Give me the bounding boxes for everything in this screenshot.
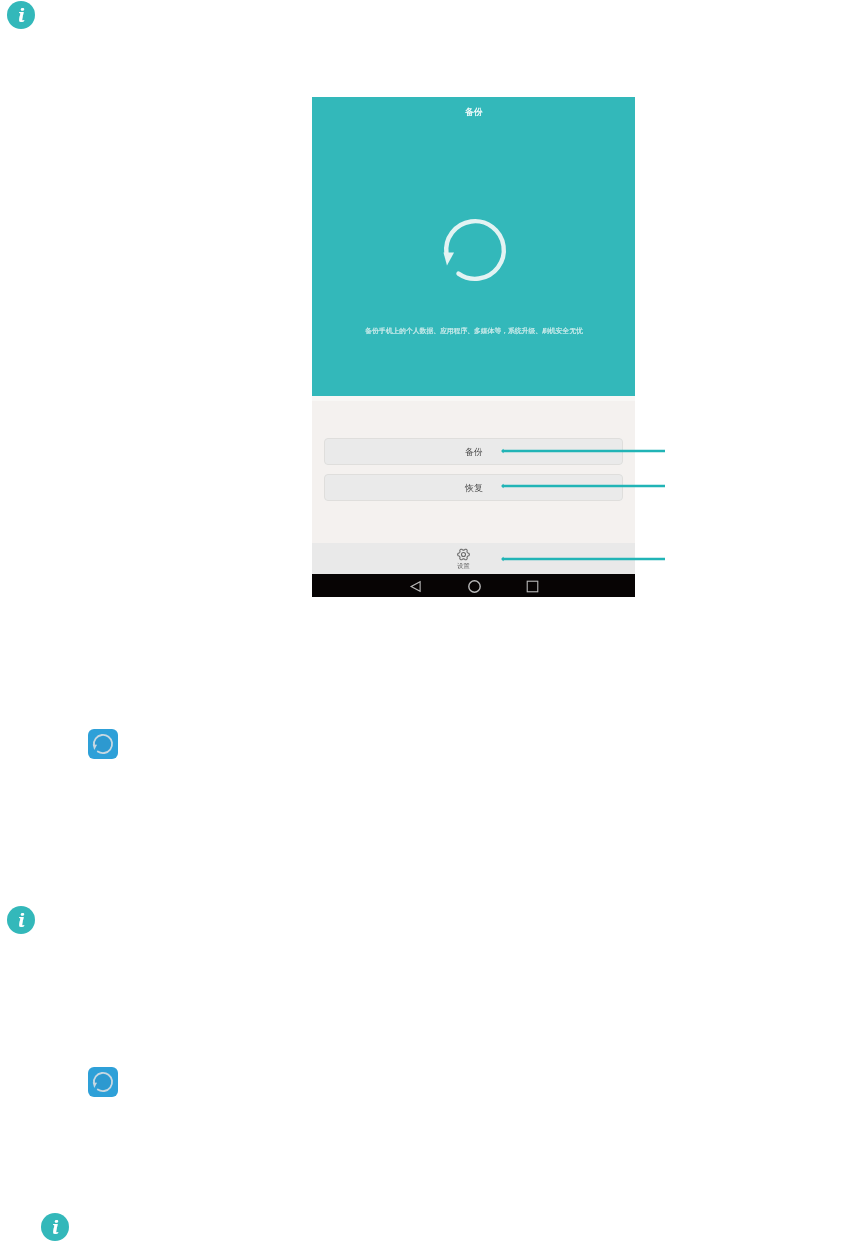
button[interactable]: 恢复	[324, 474, 623, 501]
button[interactable]: 设置	[312, 543, 635, 574]
staticText: i	[18, 2, 25, 27]
button[interactable]: Home	[466, 578, 482, 594]
button[interactable]: Back	[407, 578, 423, 594]
staticText: 备份手机上的个人数据、应用程序、多媒体等，系统升级、刷机安全无忧	[365, 326, 583, 335]
button[interactable]: Recent apps	[524, 578, 540, 594]
button[interactable]: Backup app	[88, 1067, 118, 1097]
staticText: 备份	[465, 446, 483, 457]
staticText: i	[52, 1214, 59, 1239]
button[interactable]: 备份	[324, 438, 623, 465]
button[interactable]: Information	[7, 906, 35, 934]
button[interactable]: Information	[7, 1, 35, 29]
staticText: 设置	[457, 562, 470, 570]
button[interactable]: Information	[41, 1213, 69, 1241]
staticText: 恢复	[465, 482, 483, 493]
button[interactable]: Backup app	[88, 729, 118, 759]
staticText: 备份	[465, 106, 483, 117]
staticText: i	[18, 907, 25, 932]
